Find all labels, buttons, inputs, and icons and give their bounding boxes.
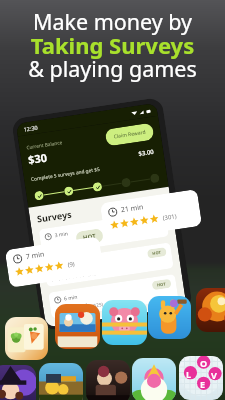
staticText: V: [211, 369, 217, 381]
button[interactable]: 15 min: [53, 306, 180, 326]
staticText: 21 min: [120, 202, 144, 215]
button[interactable]: 6 min: [48, 274, 178, 318]
button[interactable]: 12 min: [43, 242, 174, 287]
button[interactable]: Mahjong game: [5, 317, 48, 360]
staticText: HOT: [157, 281, 166, 288]
staticText: HOT: [82, 232, 96, 242]
button[interactable]: Epoch game: [86, 360, 130, 400]
staticText: (125): [92, 301, 104, 308]
button[interactable]: HOT: [75, 228, 104, 246]
staticText: 12:30: [23, 123, 39, 133]
button[interactable]: Warships game: [55, 304, 100, 349]
staticText: L: [186, 368, 192, 380]
button[interactable]: 3 min: [39, 211, 169, 255]
button[interactable]: Word Love game: [179, 356, 223, 400]
button[interactable]: Dragon game: [196, 288, 225, 332]
staticText: Current Balance: [26, 139, 63, 151]
staticText: Complete 5 surveys and get $5: [31, 166, 101, 183]
staticText: & playing games: [0, 54, 225, 83]
button[interactable]: 7 min: [5, 236, 104, 288]
button[interactable]: Pig game: [102, 300, 147, 345]
staticText: (43): [82, 238, 91, 245]
staticText: HOT: [147, 218, 157, 224]
staticText: Claim Reward: [113, 129, 147, 140]
staticText: O: [200, 357, 208, 369]
staticText: 7 min: [25, 249, 45, 262]
button[interactable]: 21 min: [100, 189, 202, 240]
staticText: HOT: [152, 250, 162, 256]
staticText: (301): [162, 212, 177, 222]
staticText: 12 min: [59, 261, 77, 271]
staticText: (9): [67, 260, 76, 269]
button[interactable]: Claim Reward: [105, 123, 155, 146]
staticText: 6 min: [64, 293, 78, 302]
staticText: Taking Surveys: [0, 30, 225, 60]
button[interactable]: Witch Puzzle game: [0, 365, 36, 400]
staticText: $30: [27, 150, 48, 167]
staticText: Surveys: [36, 208, 72, 225]
button[interactable]: Flower blast game: [132, 358, 176, 400]
staticText: $3.00: [138, 148, 155, 158]
button[interactable]: Magnet game: [39, 363, 83, 400]
staticText: Make money by: [0, 7, 225, 36]
staticText: 3 min: [54, 230, 69, 239]
button[interactable]: Bunny game: [148, 296, 191, 339]
staticText: E: [200, 378, 206, 390]
